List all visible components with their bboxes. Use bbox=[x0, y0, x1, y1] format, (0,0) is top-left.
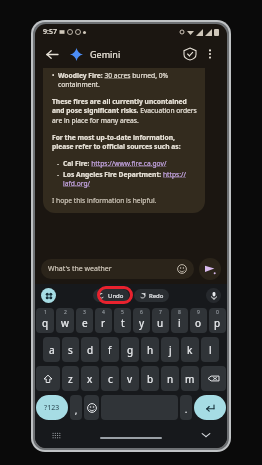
staticText: n bbox=[167, 372, 174, 386]
staticText: t bbox=[121, 316, 125, 330]
button[interactable]: Enter bbox=[194, 395, 226, 420]
staticText: , bbox=[75, 405, 78, 416]
button[interactable]: a bbox=[43, 337, 60, 362]
button[interactable]: j bbox=[161, 337, 179, 362]
button[interactable]: 2 bbox=[56, 308, 74, 333]
staticText: 5 bbox=[121, 309, 124, 316]
staticText: s bbox=[68, 343, 73, 357]
staticText: m bbox=[185, 372, 195, 386]
staticText: d bbox=[87, 343, 94, 357]
button[interactable]: Toolbar bbox=[41, 288, 56, 303]
staticText: 7 bbox=[159, 309, 162, 316]
staticText: v bbox=[127, 372, 133, 386]
button[interactable]: Emoji bbox=[84, 395, 99, 420]
button[interactable]: 9 bbox=[190, 308, 207, 333]
staticText: 1 bbox=[44, 309, 47, 316]
staticText: Redo bbox=[149, 292, 164, 300]
button[interactable]: m bbox=[181, 366, 199, 391]
button[interactable]: g bbox=[121, 337, 139, 362]
staticText: g bbox=[127, 343, 134, 357]
staticText: Cal Fire: https://www.fire.ca.gov/ bbox=[63, 159, 167, 168]
staticText: 3 bbox=[83, 309, 86, 316]
staticText: For the most up-to-date information, ple… bbox=[52, 133, 197, 151]
button[interactable]: d bbox=[81, 337, 99, 362]
button[interactable]: 6 bbox=[133, 308, 150, 333]
button[interactable]: More options bbox=[200, 44, 220, 64]
button[interactable]: k bbox=[181, 337, 199, 362]
button[interactable]: Backspace bbox=[201, 366, 226, 391]
staticText: p bbox=[214, 316, 221, 330]
staticText: f bbox=[108, 343, 112, 357]
button[interactable]: ?123 bbox=[36, 395, 68, 420]
button[interactable]: Voice input bbox=[206, 288, 221, 303]
button[interactable]: Redo bbox=[134, 289, 169, 302]
staticText: ?123 bbox=[44, 403, 60, 413]
button[interactable]: 3 bbox=[76, 308, 93, 333]
staticText: 6 bbox=[140, 309, 143, 316]
staticText: 9 bbox=[197, 309, 200, 316]
staticText: Undo bbox=[108, 292, 124, 300]
staticText: b bbox=[147, 372, 154, 386]
button[interactable]: f bbox=[101, 337, 119, 362]
button[interactable]: 0 bbox=[209, 308, 226, 333]
button[interactable]: Period bbox=[180, 395, 192, 420]
staticText: 8 bbox=[178, 309, 181, 316]
staticText: x bbox=[87, 372, 93, 386]
staticText: u bbox=[157, 316, 164, 330]
staticText: . bbox=[185, 404, 188, 415]
button[interactable]: 5 bbox=[114, 308, 131, 333]
staticText: 9:57 bbox=[43, 27, 57, 37]
button[interactable]: Hide keyboard bbox=[199, 428, 213, 442]
button[interactable]: Back bbox=[42, 44, 62, 64]
button[interactable]: 8 bbox=[171, 308, 188, 333]
staticText: k bbox=[187, 343, 193, 357]
staticText: o bbox=[195, 316, 202, 330]
staticText: e bbox=[82, 316, 88, 330]
staticText: What's the weather bbox=[48, 264, 112, 274]
staticText: Woodley Fire: 30 acres burned, 0% contai… bbox=[58, 71, 197, 89]
button[interactable]: n bbox=[161, 366, 179, 391]
button[interactable]: Send bbox=[199, 258, 221, 280]
staticText: z bbox=[68, 372, 73, 386]
staticText: I hope this information is helpful. bbox=[52, 196, 157, 205]
staticText: 2 bbox=[64, 309, 67, 316]
staticText: - bbox=[57, 159, 60, 168]
button[interactable]: Comma bbox=[70, 395, 82, 420]
button[interactable]: s bbox=[62, 337, 79, 362]
button[interactable]: h bbox=[141, 337, 159, 362]
button[interactable]: Shift bbox=[36, 366, 60, 391]
button[interactable]: 4 bbox=[95, 308, 112, 333]
button[interactable]: b bbox=[141, 366, 159, 391]
staticText: j bbox=[169, 343, 172, 357]
button[interactable]: Privacy shield bbox=[180, 44, 200, 64]
button[interactable]: v bbox=[121, 366, 139, 391]
button[interactable]: c bbox=[101, 366, 119, 391]
staticText: Los Angeles Fire Department: https://laf… bbox=[63, 170, 197, 188]
staticText: These fires are all currently uncontaine… bbox=[52, 97, 197, 125]
staticText: q bbox=[42, 316, 49, 330]
button[interactable]: x bbox=[81, 366, 99, 391]
staticText: i bbox=[178, 316, 181, 330]
staticText: 4 bbox=[102, 309, 105, 316]
staticText: Gemini bbox=[90, 48, 121, 60]
staticText: h bbox=[147, 343, 154, 357]
staticText: 0 bbox=[216, 309, 219, 316]
button[interactable]: l bbox=[201, 337, 219, 362]
button[interactable]: 7 bbox=[152, 308, 169, 333]
staticText: - bbox=[57, 170, 60, 179]
staticText: a bbox=[49, 343, 55, 357]
staticText: c bbox=[108, 372, 113, 386]
staticText: • bbox=[52, 71, 55, 80]
staticText: y bbox=[139, 316, 145, 330]
button[interactable]: 1 bbox=[36, 308, 54, 333]
button[interactable]: z bbox=[62, 366, 79, 391]
button[interactable]: Switch keyboard bbox=[49, 428, 63, 442]
staticText: r bbox=[101, 316, 106, 330]
staticText: w bbox=[61, 316, 69, 330]
staticText: l bbox=[209, 343, 212, 357]
button[interactable]: Undo bbox=[93, 289, 129, 302]
button[interactable]: What's the weather bbox=[41, 259, 194, 279]
